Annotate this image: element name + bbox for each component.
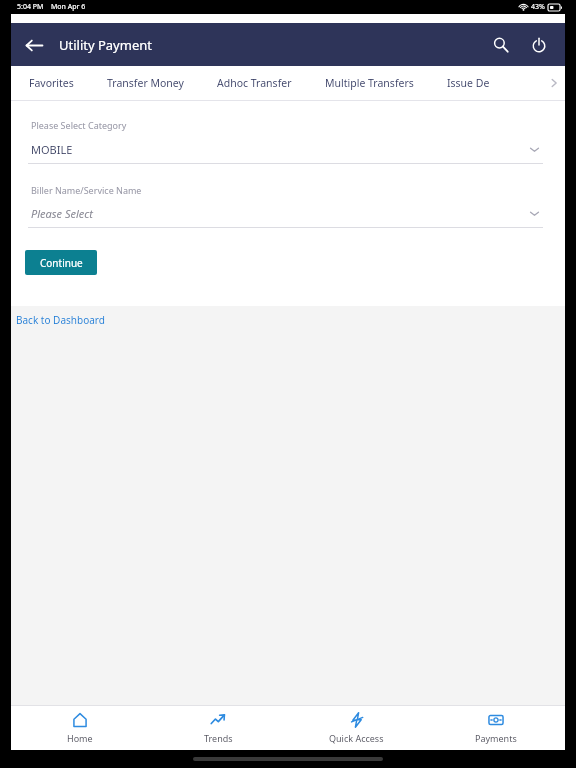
staticText: Please Select Category bbox=[31, 119, 127, 131]
button[interactable]: Continue bbox=[25, 250, 97, 275]
button[interactable]: Issue De bbox=[447, 66, 490, 100]
staticText: Biller Name/Service Name bbox=[31, 184, 142, 196]
button[interactable]: MOBILE bbox=[11, 140, 565, 164]
button[interactable]: Multiple Transfers bbox=[325, 66, 414, 100]
staticText: Favorites bbox=[29, 76, 74, 90]
staticText: Please Select bbox=[31, 206, 93, 221]
button[interactable]: Adhoc Transfer bbox=[217, 66, 292, 100]
button[interactable]: Payments bbox=[426, 706, 565, 750]
staticText: Adhoc Transfer bbox=[217, 76, 292, 90]
staticText: Multiple Transfers bbox=[325, 76, 414, 90]
staticText: Continue bbox=[40, 256, 83, 270]
staticText: MOBILE bbox=[31, 142, 73, 157]
button[interactable]: Back bbox=[17, 28, 51, 62]
button[interactable]: Home bbox=[11, 706, 149, 750]
button[interactable]: More tabs bbox=[543, 66, 565, 100]
button[interactable]: Quick Access bbox=[287, 706, 426, 750]
staticText: 43% bbox=[531, 2, 545, 12]
button[interactable]: Transfer Money bbox=[107, 66, 184, 100]
staticText: 5:04 PM bbox=[17, 2, 44, 12]
staticText: Issue De bbox=[447, 76, 490, 90]
button[interactable]: Power / Logout bbox=[523, 29, 555, 61]
button[interactable]: Please Select bbox=[11, 204, 565, 228]
staticText: Mon Apr 6 bbox=[51, 2, 86, 12]
staticText: Quick Access bbox=[329, 732, 384, 744]
button[interactable]: Favorites bbox=[29, 66, 74, 100]
button[interactable]: Search bbox=[485, 29, 517, 61]
staticText: Home bbox=[67, 732, 93, 744]
staticText: Transfer Money bbox=[107, 76, 184, 90]
staticText: Payments bbox=[475, 732, 517, 744]
button[interactable]: Trends bbox=[149, 706, 287, 750]
button[interactable]: Back to Dashboard bbox=[16, 313, 105, 327]
staticText: Trends bbox=[204, 732, 233, 744]
staticText: Utility Payment bbox=[59, 36, 152, 54]
